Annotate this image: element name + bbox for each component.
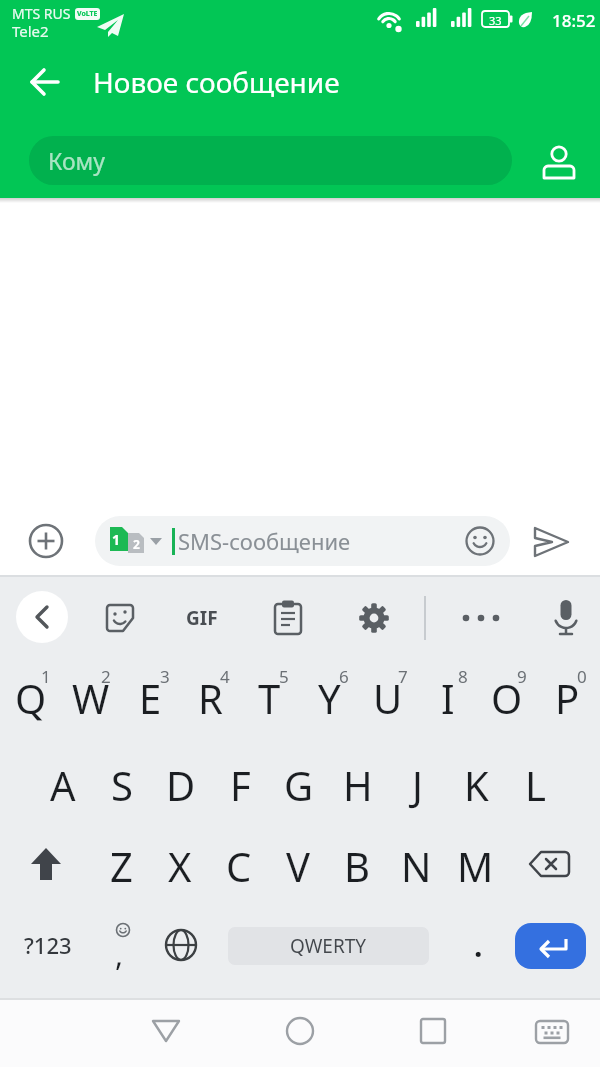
- staticText: MTS RUS: [12, 4, 71, 23]
- staticText: H: [343, 758, 373, 812]
- button[interactable]: A: [36, 758, 90, 812]
- staticText: 1: [41, 665, 51, 688]
- staticText: M: [457, 839, 494, 893]
- button[interactable]: E: [123, 672, 177, 730]
- staticText: Y: [318, 671, 341, 725]
- button[interactable]: Y: [302, 672, 356, 730]
- staticText: 8: [458, 665, 468, 688]
- staticText: U: [373, 671, 403, 725]
- button[interactable]: W: [64, 672, 118, 730]
- button[interactable]: V: [271, 839, 325, 893]
- staticText: .: [474, 925, 483, 966]
- staticText: A: [50, 758, 76, 812]
- staticText: 5: [279, 665, 289, 688]
- staticText: V: [286, 839, 310, 893]
- staticText: T: [258, 671, 281, 725]
- staticText: 3: [160, 665, 170, 688]
- staticText: P: [555, 671, 580, 725]
- staticText: L: [525, 758, 546, 812]
- staticText: 0: [577, 665, 587, 688]
- button[interactable]: [162, 926, 200, 964]
- button[interactable]: [280, 1011, 320, 1051]
- staticText: X: [168, 839, 192, 893]
- button[interactable]: I: [421, 672, 475, 730]
- button[interactable]: [458, 600, 504, 636]
- button[interactable]: Кому: [29, 136, 512, 185]
- button[interactable]: [536, 138, 582, 184]
- button[interactable]: J: [390, 758, 444, 812]
- staticText: I: [441, 671, 455, 725]
- staticText: 6: [339, 665, 349, 688]
- staticText: J: [412, 758, 423, 812]
- staticText: R: [198, 671, 223, 725]
- staticText: SMS-сообщение: [178, 526, 351, 556]
- button[interactable]: [548, 597, 584, 639]
- staticText: 4: [220, 665, 230, 688]
- button[interactable]: P: [540, 672, 594, 730]
- button[interactable]: Z: [94, 839, 148, 893]
- button[interactable]: G: [272, 758, 326, 812]
- staticText: D: [166, 758, 196, 812]
- button[interactable]: [524, 844, 580, 888]
- staticText: O: [491, 671, 523, 725]
- staticText: 2: [133, 536, 140, 552]
- staticText: 18:52: [552, 9, 596, 32]
- button[interactable]: B: [330, 839, 384, 893]
- button[interactable]: [271, 599, 305, 637]
- staticText: GIF: [186, 605, 218, 631]
- button[interactable]: [533, 1011, 573, 1051]
- button[interactable]: N: [389, 839, 443, 893]
- staticText: S: [111, 758, 133, 812]
- staticText: 2: [101, 665, 111, 688]
- button[interactable]: ,: [98, 920, 144, 970]
- button[interactable]: L: [508, 758, 562, 812]
- staticText: Новое сообщение: [93, 63, 340, 101]
- button[interactable]: T: [242, 672, 296, 730]
- staticText: Tele2: [12, 21, 49, 41]
- staticText: G: [284, 758, 314, 812]
- button[interactable]: [146, 1011, 186, 1051]
- button[interactable]: [102, 600, 138, 636]
- button[interactable]: [22, 58, 70, 106]
- button[interactable]: U: [361, 672, 415, 730]
- staticText: 33: [489, 13, 502, 28]
- staticText: Кому: [48, 145, 105, 176]
- staticText: ?123: [24, 930, 72, 960]
- staticText: QWERTY: [290, 933, 367, 959]
- button[interactable]: K: [449, 758, 503, 812]
- button[interactable]: X: [153, 839, 207, 893]
- staticText: C: [226, 839, 252, 893]
- staticText: B: [344, 839, 370, 893]
- button[interactable]: D: [154, 758, 208, 812]
- button[interactable]: [515, 923, 586, 969]
- button[interactable]: [20, 842, 72, 890]
- button[interactable]: [16, 591, 68, 643]
- button[interactable]: F: [213, 758, 267, 812]
- button[interactable]: H: [331, 758, 385, 812]
- button[interactable]: QWERTY: [228, 927, 429, 965]
- button[interactable]: 1: [95, 516, 510, 566]
- staticText: W: [72, 671, 110, 725]
- staticText: 7: [398, 665, 408, 688]
- staticText: Q: [15, 671, 47, 725]
- button[interactable]: [26, 521, 66, 561]
- staticText: ,: [115, 934, 124, 970]
- button[interactable]: S: [95, 758, 149, 812]
- button[interactable]: [530, 522, 574, 562]
- staticText: VoLTE: [77, 9, 98, 19]
- staticText: N: [401, 839, 432, 893]
- button[interactable]: O: [480, 672, 534, 730]
- button[interactable]: [413, 1011, 453, 1051]
- button[interactable]: R: [183, 672, 237, 730]
- staticText: 9: [517, 665, 527, 688]
- button[interactable]: M: [448, 839, 502, 893]
- staticText: Z: [110, 839, 133, 893]
- staticText: 1: [112, 530, 121, 549]
- button[interactable]: [356, 600, 392, 636]
- staticText: K: [464, 758, 489, 812]
- staticText: F: [230, 758, 251, 812]
- button[interactable]: Q: [4, 672, 58, 730]
- staticText: E: [139, 671, 162, 725]
- button[interactable]: C: [212, 839, 266, 893]
